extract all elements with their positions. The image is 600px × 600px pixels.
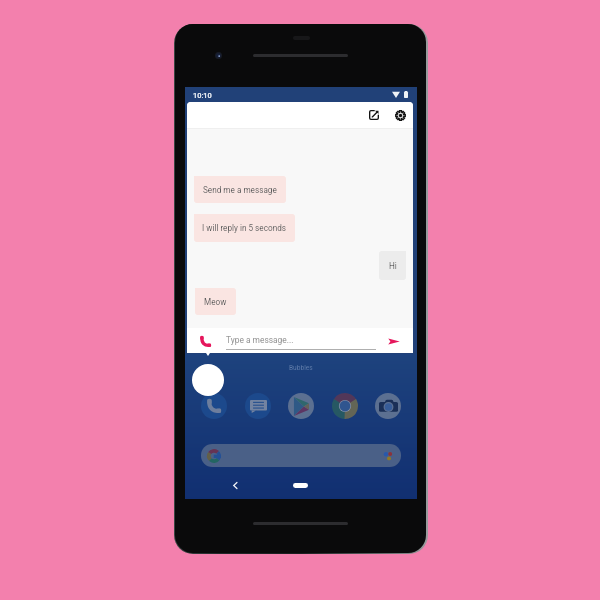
button[interactable]: Open in new window xyxy=(366,107,382,123)
button[interactable]: Meow xyxy=(195,288,236,315)
other: Messages xyxy=(245,393,271,419)
button[interactable]: Search xyxy=(201,444,401,467)
button[interactable]: Send xyxy=(385,332,403,350)
other: Chrome xyxy=(332,393,358,419)
button[interactable]: I will reply in 5 seconds xyxy=(194,214,295,242)
button[interactable]: Call xyxy=(196,332,214,350)
staticText: Type a message... xyxy=(226,335,294,345)
staticText: I will reply in 5 seconds xyxy=(202,223,287,233)
other: Play Store xyxy=(288,393,314,419)
staticText: Bubbles xyxy=(289,364,313,372)
button[interactable]: Camera xyxy=(375,393,401,419)
button[interactable]: Hi xyxy=(379,251,406,280)
staticText: Meow xyxy=(204,297,227,307)
button[interactable]: Home xyxy=(293,483,308,488)
button[interactable]: Settings xyxy=(392,107,408,123)
staticText: 10:10 xyxy=(193,91,212,100)
button[interactable]: Play Store xyxy=(288,393,314,419)
button[interactable]: Back xyxy=(229,479,241,491)
button[interactable]: Phone xyxy=(201,393,227,419)
other: Camera xyxy=(375,393,401,419)
button[interactable]: Chat bubble xyxy=(192,364,224,396)
button[interactable]: Send me a message xyxy=(194,176,286,203)
button[interactable]: Type a message... xyxy=(226,328,376,353)
button[interactable]: Chrome xyxy=(332,393,358,419)
staticText: Hi xyxy=(389,261,397,271)
other: Phone xyxy=(201,393,227,419)
staticText: Send me a message xyxy=(203,185,277,195)
button[interactable]: Messages xyxy=(245,393,271,419)
